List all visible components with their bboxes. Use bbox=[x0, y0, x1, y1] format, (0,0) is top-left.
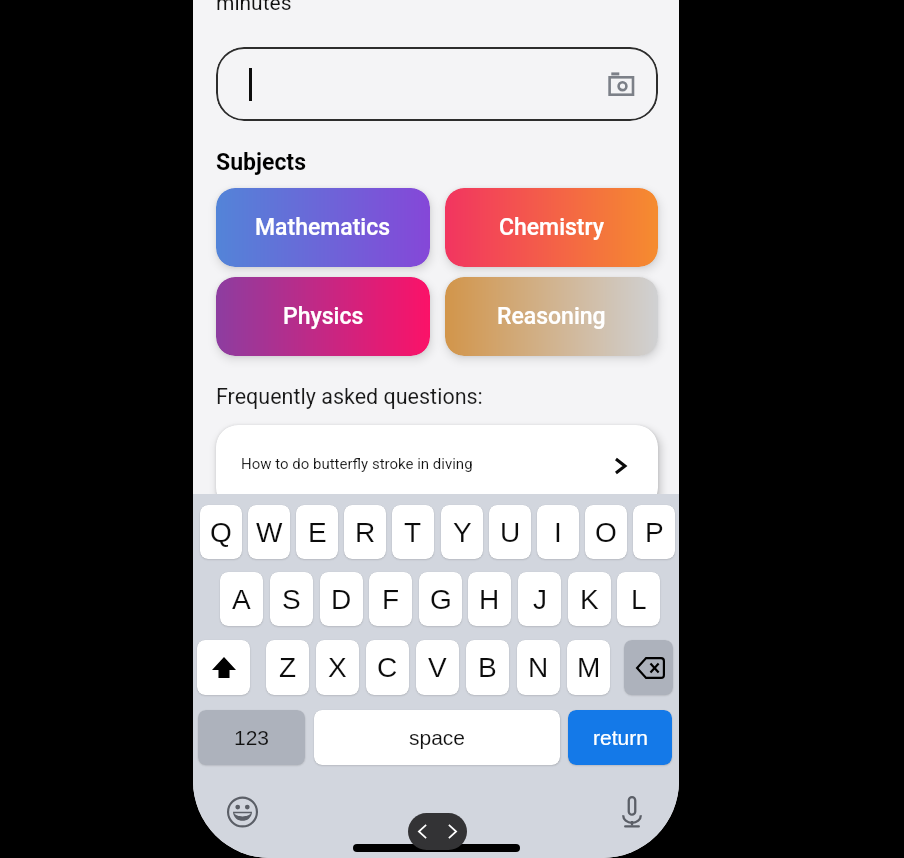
staticText: T bbox=[404, 517, 422, 548]
staticText: O bbox=[595, 517, 617, 548]
staticText: X bbox=[328, 652, 347, 683]
button[interactable]: Q bbox=[200, 505, 242, 559]
staticText: U bbox=[500, 517, 521, 548]
staticText: Mathematics bbox=[255, 214, 391, 241]
button[interactable]: U bbox=[489, 505, 531, 559]
button[interactable]: F bbox=[369, 572, 412, 626]
staticText: Chemistry bbox=[499, 214, 605, 241]
staticText: N bbox=[528, 652, 549, 683]
staticText: C bbox=[377, 652, 398, 683]
button[interactable]: Navigate bbox=[408, 813, 467, 850]
staticText: minutes bbox=[216, 0, 292, 16]
staticText: J bbox=[533, 584, 547, 615]
staticText: D bbox=[331, 584, 352, 615]
staticText: How to do butterfly stroke in diving bbox=[241, 455, 473, 473]
staticText: R bbox=[355, 517, 376, 548]
button[interactable]: I bbox=[537, 505, 579, 559]
staticText: Frequently asked questions: bbox=[216, 384, 483, 409]
staticText: G bbox=[430, 584, 452, 615]
button[interactable]: G bbox=[419, 572, 462, 626]
button[interactable]: Physics bbox=[216, 277, 430, 356]
button[interactable]: R bbox=[344, 505, 386, 559]
button[interactable]: Mathematics bbox=[216, 188, 430, 267]
button[interactable]: J bbox=[518, 572, 561, 626]
button[interactable]: O bbox=[585, 505, 627, 559]
button[interactable]: K bbox=[568, 572, 611, 626]
button[interactable]: Chemistry bbox=[445, 188, 658, 267]
staticText: S bbox=[282, 584, 301, 615]
staticText: 123 bbox=[234, 726, 270, 749]
staticText: K bbox=[580, 584, 599, 615]
button[interactable]: L bbox=[617, 572, 660, 626]
staticText: M bbox=[577, 652, 601, 683]
button[interactable]: return bbox=[568, 710, 672, 765]
button[interactable]: Voice input bbox=[622, 796, 642, 828]
staticText: Subjects bbox=[216, 149, 306, 176]
button[interactable]: Y bbox=[441, 505, 483, 559]
staticText: return bbox=[593, 726, 648, 749]
button[interactable]: How to do butterfly stroke in diving bbox=[216, 425, 658, 510]
staticText: W bbox=[256, 517, 283, 548]
staticText: A bbox=[232, 584, 251, 615]
staticText: I bbox=[554, 517, 562, 548]
button[interactable]: space bbox=[314, 710, 560, 765]
staticText: Q bbox=[210, 517, 232, 548]
staticText: P bbox=[645, 517, 664, 548]
button[interactable]: 123 bbox=[198, 710, 305, 765]
button[interactable]: Z bbox=[266, 640, 309, 695]
button[interactable]: N bbox=[517, 640, 560, 695]
button[interactable]: W bbox=[248, 505, 290, 559]
button[interactable]: V bbox=[416, 640, 459, 695]
button[interactable]: Backspace bbox=[624, 640, 673, 695]
button[interactable]: T bbox=[392, 505, 434, 559]
button[interactable]: B bbox=[466, 640, 509, 695]
staticText: L bbox=[631, 584, 647, 615]
button[interactable]: D bbox=[320, 572, 363, 626]
staticText: space bbox=[409, 726, 466, 749]
staticText: Physics bbox=[283, 303, 364, 330]
staticText: Y bbox=[453, 517, 472, 548]
button[interactable]: H bbox=[468, 572, 511, 626]
button[interactable]: Emoji bbox=[226, 795, 259, 829]
staticText: H bbox=[479, 584, 500, 615]
staticText: F bbox=[382, 584, 400, 615]
staticText: Reasoning bbox=[497, 303, 606, 330]
button[interactable]: X bbox=[316, 640, 359, 695]
button[interactable]: A bbox=[220, 572, 263, 626]
button[interactable]: E bbox=[296, 505, 338, 559]
staticText: E bbox=[308, 517, 327, 548]
staticText: V bbox=[428, 652, 447, 683]
button[interactable]: Reasoning bbox=[445, 277, 658, 356]
button[interactable]: Camera bbox=[607, 69, 637, 99]
staticText: Z bbox=[279, 652, 297, 683]
button[interactable]: S bbox=[270, 572, 313, 626]
button[interactable]: C bbox=[366, 640, 409, 695]
button[interactable]: P bbox=[633, 505, 675, 559]
button[interactable]: Camera bbox=[216, 47, 658, 121]
staticText: B bbox=[478, 652, 497, 683]
button[interactable]: M bbox=[567, 640, 610, 695]
button[interactable]: Shift bbox=[197, 640, 250, 695]
